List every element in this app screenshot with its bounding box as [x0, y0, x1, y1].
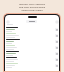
button[interactable]: Open item — [55, 64, 58, 67]
button[interactable]: Open item — [5, 32, 59, 38]
button[interactable]: Open item — [5, 56, 59, 62]
button[interactable]: Open item — [55, 46, 58, 49]
button[interactable]: Open item — [55, 34, 58, 37]
button[interactable]: Menu — [6, 20, 9, 23]
button[interactable]: Open item — [5, 50, 59, 56]
button[interactable]: Open item — [55, 28, 58, 31]
button[interactable]: Open item — [55, 40, 58, 43]
button[interactable] — [26, 20, 37, 23]
button[interactable]: Open item — [55, 58, 58, 61]
staticText: using social media — [3, 8, 61, 11]
staticText: Monitor your creations — [3, 2, 61, 5]
button[interactable]: Search — [55, 20, 58, 23]
button[interactable]: Open item — [5, 26, 59, 32]
staticText: and start moving while — [3, 5, 61, 8]
button[interactable]: Open item — [5, 44, 59, 50]
button[interactable]: Open item — [5, 62, 59, 68]
button[interactable]: Open item — [55, 52, 58, 55]
button[interactable]: Open item — [5, 38, 59, 44]
